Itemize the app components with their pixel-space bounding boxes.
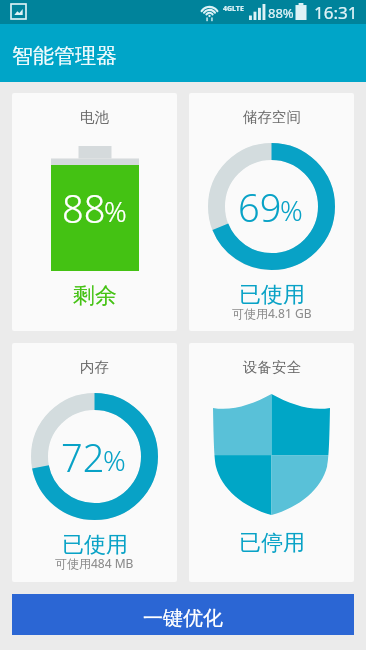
button[interactable]: 储存空间 bbox=[189, 93, 354, 331]
staticText: 69 bbox=[238, 181, 282, 233]
staticText: % bbox=[104, 192, 127, 230]
staticText: 电池 bbox=[80, 108, 109, 126]
staticText: 一键优化 bbox=[143, 606, 223, 631]
staticText: 设备安全 bbox=[243, 358, 301, 376]
staticText: 4GLTE bbox=[223, 4, 244, 14]
staticText: 可使用484 MB bbox=[55, 555, 134, 571]
staticText: 储存空间 bbox=[243, 108, 301, 126]
staticText: 内存 bbox=[80, 358, 109, 376]
button[interactable]: 一键优化 bbox=[12, 594, 354, 635]
button[interactable]: 电池 bbox=[12, 93, 177, 331]
staticText: 已使用 bbox=[62, 531, 128, 559]
staticText: % bbox=[280, 191, 303, 229]
staticText: 已停用 bbox=[239, 529, 305, 557]
button[interactable]: 设备安全 bbox=[189, 343, 354, 582]
staticText: 16:31 bbox=[314, 1, 358, 24]
staticText: 72 bbox=[61, 431, 105, 483]
staticText: 智能管理器 bbox=[12, 43, 117, 69]
staticText: 88 bbox=[62, 182, 106, 234]
staticText: 可使用4.81 GB bbox=[232, 305, 312, 321]
staticText: 剩余 bbox=[73, 282, 117, 310]
staticText: 已使用 bbox=[239, 281, 305, 309]
staticText: % bbox=[103, 441, 126, 479]
button[interactable]: 内存 bbox=[12, 343, 177, 582]
staticText: 88% bbox=[268, 4, 294, 22]
